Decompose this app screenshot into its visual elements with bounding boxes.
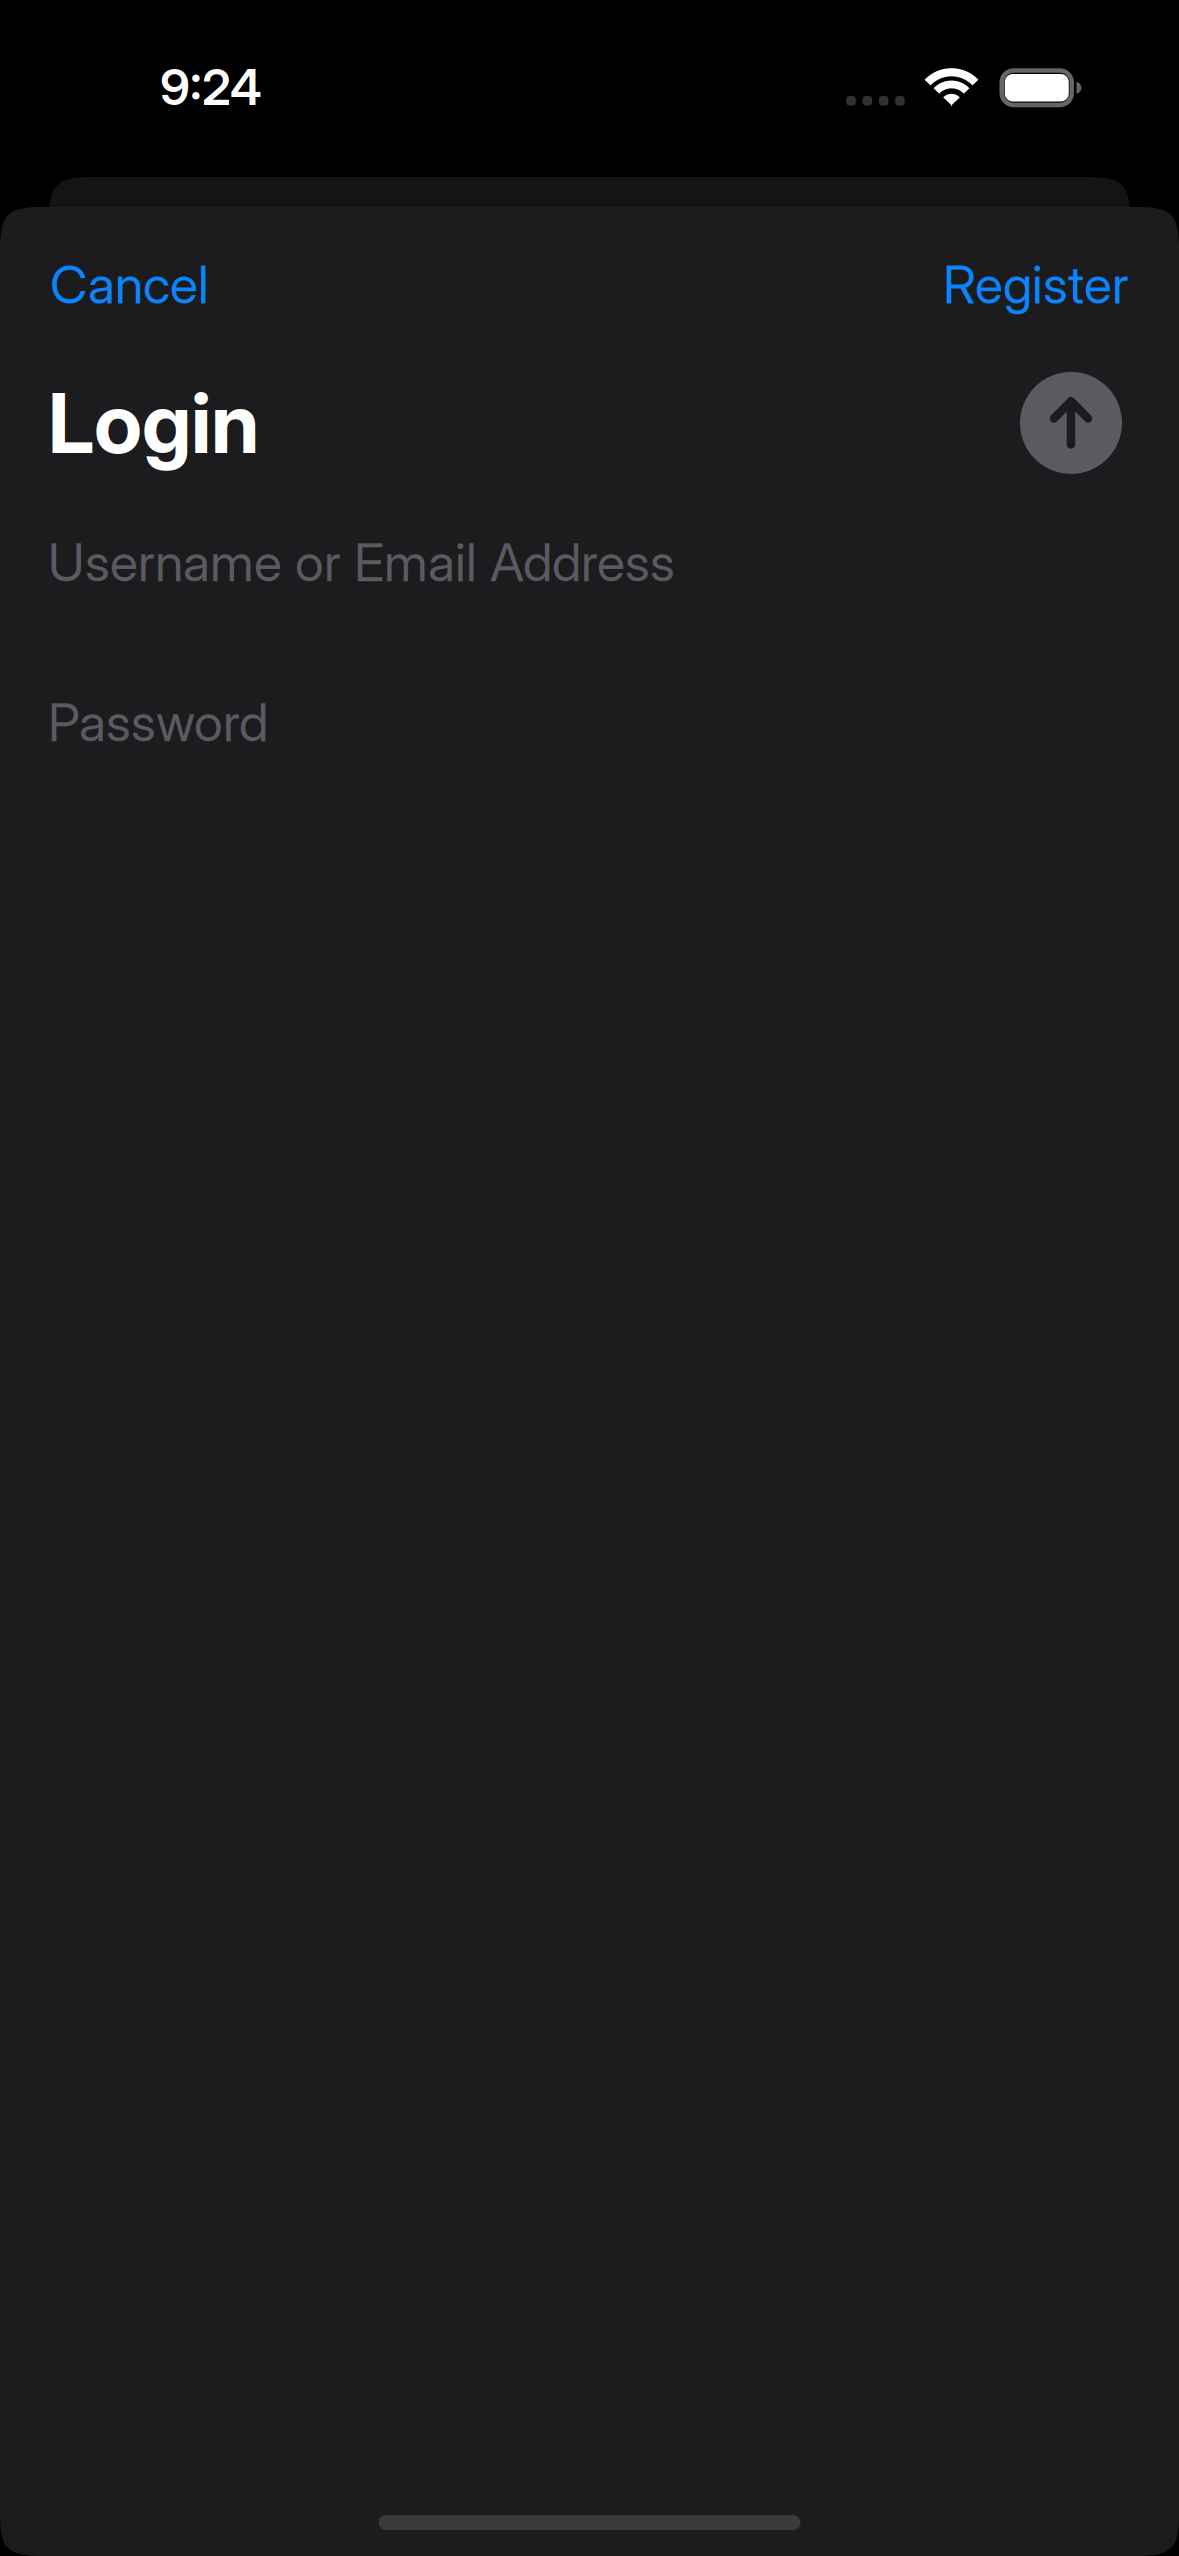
button[interactable]: Submit xyxy=(1020,372,1122,474)
staticText: Register xyxy=(943,253,1129,316)
staticText: Login xyxy=(48,373,259,473)
button[interactable]: Register xyxy=(943,253,1129,316)
button[interactable]: Password xyxy=(0,691,1179,754)
staticText: Password xyxy=(48,691,268,754)
staticText: 9:24 xyxy=(160,57,262,117)
staticText: Username or Email Address xyxy=(48,531,675,594)
button[interactable]: Username or Email Address xyxy=(0,531,1179,594)
staticText: Cancel xyxy=(50,253,209,316)
button[interactable]: Cancel xyxy=(50,253,209,316)
